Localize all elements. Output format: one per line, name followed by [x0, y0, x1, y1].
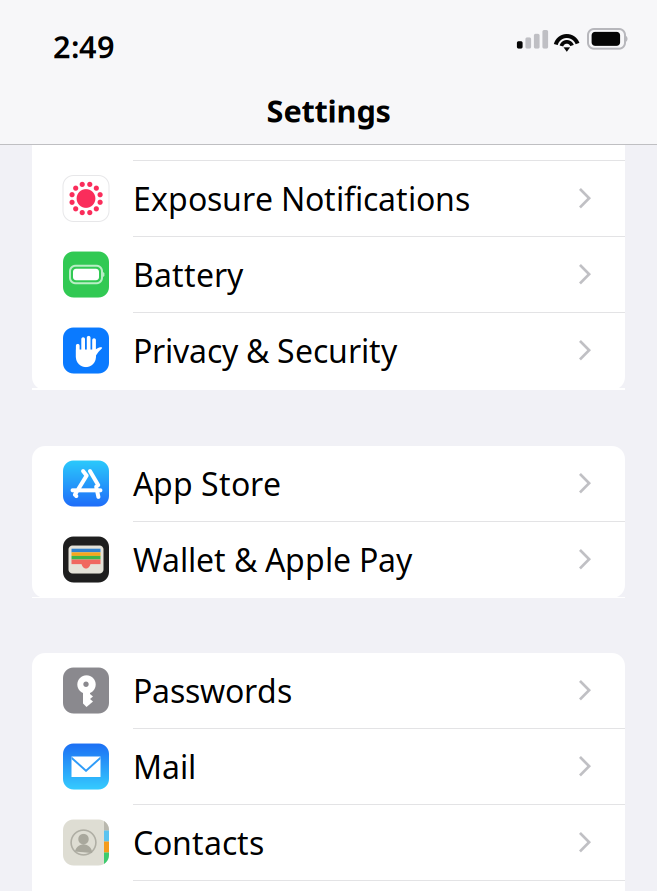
staticText: App Store	[133, 462, 281, 505]
button[interactable]: Privacy & Security	[32, 313, 625, 388]
staticText: Mail	[133, 745, 196, 788]
staticText: Privacy & Security	[133, 329, 397, 372]
button[interactable]: Mail	[32, 729, 625, 804]
button[interactable]: Passwords	[32, 653, 625, 728]
staticText: Contacts	[133, 821, 264, 864]
staticText: Exposure Notifications	[133, 177, 470, 220]
button[interactable]: Contacts	[32, 805, 625, 880]
button[interactable]: Exposure Notifications	[32, 161, 625, 236]
staticText: 2:49	[53, 26, 115, 67]
staticText: Battery	[133, 253, 243, 296]
button[interactable]: Battery	[32, 237, 625, 312]
button[interactable]: App Store	[32, 446, 625, 521]
staticText: Settings	[266, 90, 390, 131]
button[interactable]: Wallet & Apple Pay	[32, 522, 625, 597]
staticText: Passwords	[133, 669, 292, 712]
staticText: Wallet & Apple Pay	[133, 538, 412, 581]
